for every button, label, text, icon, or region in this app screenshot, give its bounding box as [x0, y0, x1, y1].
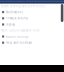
staticText: More options available here — [1, 29, 40, 32]
button[interactable]: Notifications — [0, 9, 64, 15]
button[interactable]: Help and feedback — [0, 40, 64, 46]
staticText: Help and feedback — [6, 41, 32, 44]
button[interactable]: Privacy & Security — [0, 15, 64, 21]
staticText: Notifications — [6, 10, 23, 14]
staticText: Search settings and preferences — [1, 4, 45, 8]
button[interactable]: Account settings — [0, 33, 64, 40]
staticText: Display — [6, 23, 15, 26]
staticText: Privacy & Security — [6, 16, 28, 20]
staticText: Account settings — [6, 35, 29, 38]
button[interactable]: Display — [0, 21, 64, 28]
